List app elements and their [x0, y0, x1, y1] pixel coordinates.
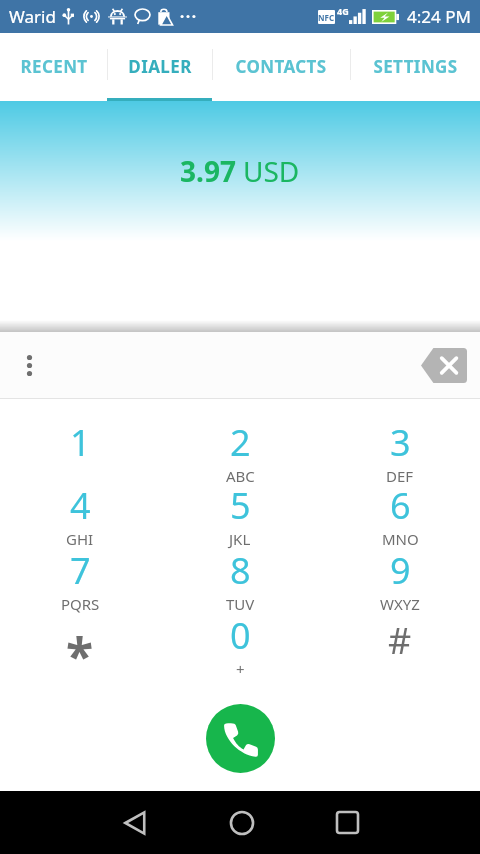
button[interactable]: Call: [206, 704, 275, 773]
button[interactable]: 7: [0, 527, 160, 592]
button[interactable]: Backspace: [414, 342, 474, 388]
button[interactable]: CONTACTS: [212, 33, 350, 101]
button[interactable]: 2: [160, 399, 320, 462]
staticText: *: [66, 621, 94, 686]
button[interactable]: #: [320, 592, 480, 657]
button[interactable]: Recents: [324, 791, 371, 854]
button[interactable]: 5: [160, 462, 320, 527]
staticText: NFC: [318, 12, 335, 23]
staticText: 1: [70, 418, 91, 467]
staticText: 7: [70, 546, 91, 595]
button[interactable]: Back: [111, 791, 158, 854]
staticText: DEF: [386, 466, 414, 486]
staticText: CONTACTS: [235, 55, 327, 78]
button[interactable]: 8: [160, 527, 320, 592]
button[interactable]: 3: [320, 399, 480, 462]
button[interactable]: More options: [17, 353, 41, 377]
button[interactable]: 4: [0, 462, 160, 527]
staticText: 4: [70, 481, 91, 530]
button[interactable]: RECENT: [0, 33, 107, 101]
staticText: Warid: [9, 5, 56, 28]
staticText: #: [388, 616, 412, 665]
staticText: ABC: [226, 466, 255, 486]
staticText: 9: [390, 546, 411, 595]
button[interactable]: 9: [320, 527, 480, 592]
staticText: 3: [390, 418, 411, 467]
staticText: RECENT: [20, 55, 88, 78]
staticText: 0: [230, 611, 251, 660]
staticText: 6: [390, 481, 411, 530]
button[interactable]: 0: [160, 592, 320, 657]
staticText: 8: [230, 546, 251, 595]
staticText: 3.97: [180, 152, 236, 190]
staticText: JKL: [229, 529, 251, 549]
staticText: WXYZ: [380, 594, 420, 614]
staticText: 2: [230, 418, 251, 467]
button[interactable]: 6: [320, 462, 480, 527]
button[interactable]: 1: [0, 399, 160, 462]
staticText: MNO: [382, 529, 419, 549]
staticText: DIALER: [128, 55, 192, 78]
staticText: GHI: [66, 529, 94, 549]
staticText: 4G: [337, 5, 349, 17]
button[interactable]: DIALER: [107, 33, 212, 101]
button[interactable]: SETTINGS: [350, 33, 480, 101]
button[interactable]: *: [0, 592, 160, 657]
staticText: PQRS: [61, 594, 100, 614]
staticText: +: [236, 659, 245, 679]
staticText: SETTINGS: [373, 55, 458, 78]
button[interactable]: Home: [218, 791, 265, 854]
staticText: 4:24 PM: [407, 5, 471, 28]
staticText: TUV: [226, 594, 255, 614]
staticText: USD: [243, 152, 300, 190]
staticText: 5: [230, 481, 251, 530]
